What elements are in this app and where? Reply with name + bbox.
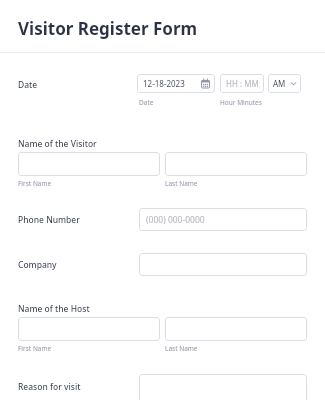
button[interactable]: Select AM or PM [268, 74, 301, 93]
button[interactable]: Hour and minutes [220, 74, 264, 93]
staticText: First Name [18, 344, 52, 353]
button[interactable]: Company [139, 253, 307, 276]
button[interactable]: Host first name [18, 317, 160, 341]
button[interactable]: Host last name [165, 317, 307, 341]
staticText: First Name [18, 179, 52, 188]
button[interactable]: Phone number [139, 208, 307, 231]
staticText: Phone Number [18, 214, 80, 226]
button[interactable]: Visitor first name [18, 152, 160, 176]
staticText: Company [18, 259, 57, 271]
button[interactable]: Date [137, 74, 215, 93]
staticText: HH : MM [226, 78, 259, 89]
staticText: Name of the Visitor [18, 138, 97, 150]
button[interactable]: Reason for visit [139, 374, 307, 400]
staticText: Date [139, 98, 154, 107]
button[interactable]: Visitor last name [165, 152, 307, 176]
staticText: (000) 000-0000 [146, 214, 205, 226]
staticText: Last Name [165, 344, 198, 353]
staticText: Last Name [165, 179, 198, 188]
staticText: AM [273, 78, 286, 89]
staticText: Reason for visit [18, 381, 81, 393]
staticText: Hour Minutes [220, 98, 262, 107]
staticText: 12-18-2023 [143, 78, 185, 89]
staticText: Date [18, 79, 38, 91]
staticText: Name of the Host [18, 303, 90, 315]
staticText: Visitor Register Form [18, 17, 198, 40]
